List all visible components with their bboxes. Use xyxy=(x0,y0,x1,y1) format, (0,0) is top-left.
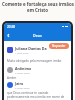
staticText: Amém xyxy=(7,76,17,80)
staticText: Deus xyxy=(33,33,42,38)
staticText: que Deus continue te usando poderosament… xyxy=(7,91,69,100)
staticText: Anônimo xyxy=(15,66,32,71)
button[interactable]: Jairo xyxy=(4,81,71,100)
staticText: Muito obrigado pela mensagem irmão xyxy=(7,59,62,63)
button[interactable]: Anônimo xyxy=(4,66,71,80)
button[interactable]: Responder xyxy=(49,43,69,49)
button[interactable]: Back xyxy=(5,32,12,39)
staticText: Comente e fortaleça seus irmãos xyxy=(2,1,74,7)
staticText: Juliana Dantas Da Silva De Jesus xyxy=(15,46,49,51)
staticText: 20:30 xyxy=(7,25,16,29)
staticText: 5 horas atrás xyxy=(15,86,30,89)
staticText: 3 horas atrás xyxy=(15,71,30,74)
staticText: 1 hora atrás xyxy=(15,51,29,54)
staticText: em Cristo xyxy=(27,7,48,13)
staticText: Jairo xyxy=(15,81,24,86)
staticText: Responder xyxy=(52,44,66,48)
button[interactable]: Juliana Dantas Da Silva De Jesus xyxy=(4,46,71,63)
